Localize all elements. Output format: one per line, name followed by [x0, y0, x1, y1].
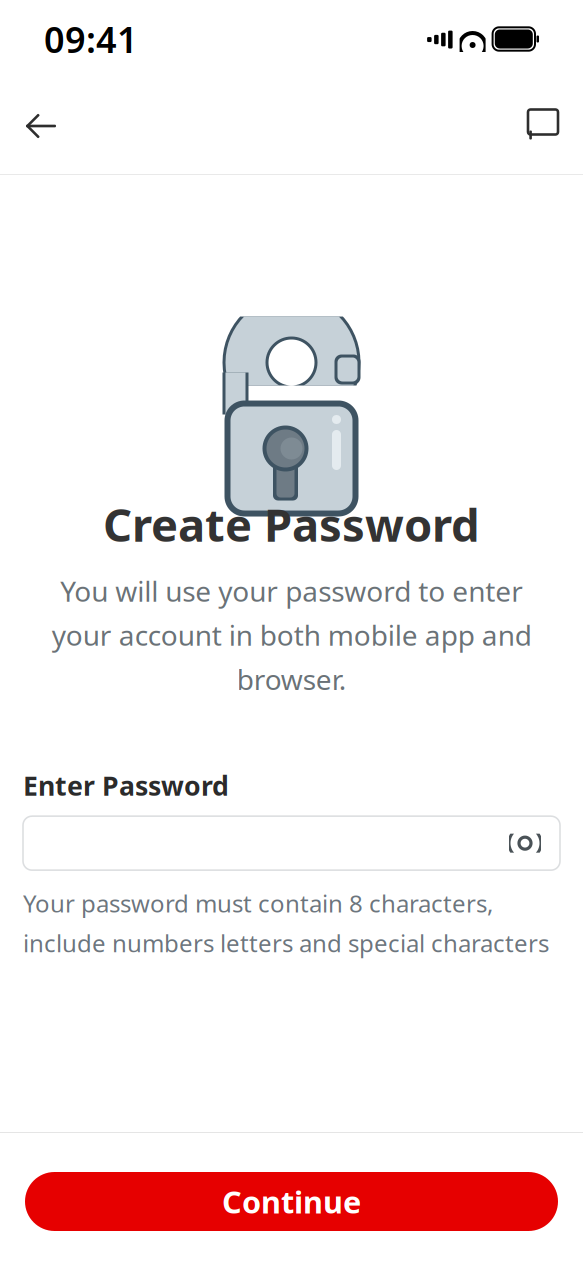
button[interactable]: Continue	[25, 1172, 558, 1231]
staticText: Enter Password	[23, 768, 229, 803]
staticText: Create Password	[103, 494, 480, 554]
button[interactable]: Messages	[507, 100, 559, 152]
staticText: You will use your password to enter your…	[51, 572, 531, 698]
staticText: Your password must contain 8 characters,…	[23, 887, 549, 959]
staticText: Continue	[222, 1181, 361, 1222]
button[interactable]: Back	[24, 100, 76, 152]
staticText: 09:41	[44, 15, 138, 63]
button[interactable]: Show password	[502, 820, 548, 866]
